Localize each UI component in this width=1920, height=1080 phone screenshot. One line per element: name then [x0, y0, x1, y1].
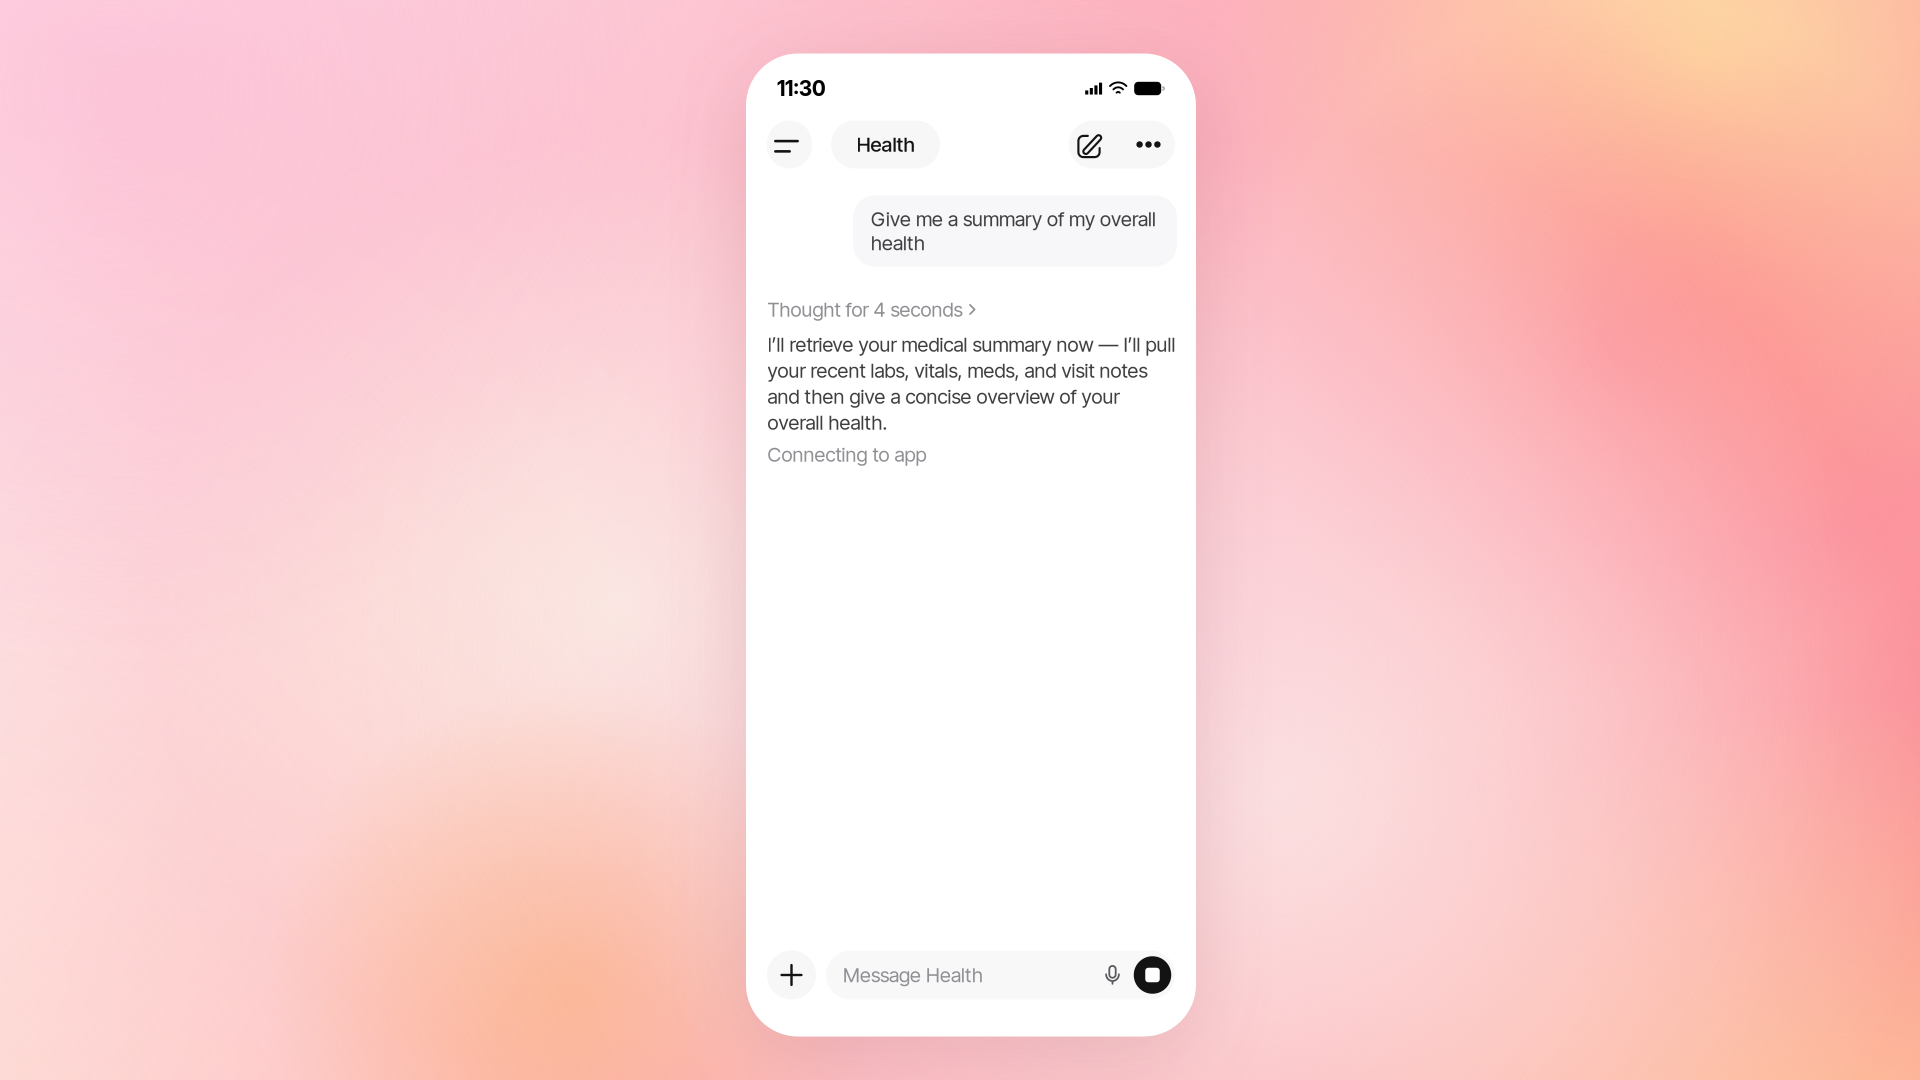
staticText: Thought for 4 seconds	[767, 298, 962, 322]
button[interactable]: Health	[831, 120, 940, 168]
staticText: Message Health	[843, 963, 983, 987]
button[interactable]: Dictate	[1095, 950, 1130, 999]
button[interactable]: Open sidebar	[767, 120, 812, 168]
staticText: 11:30	[777, 76, 826, 101]
button[interactable]: Stop generating	[1130, 950, 1175, 999]
button[interactable]: Add attachment	[767, 950, 816, 999]
staticText: Give me a summary of my overall health	[871, 207, 1156, 255]
staticText: Connecting to app	[767, 442, 926, 466]
staticText: Health	[856, 132, 914, 157]
button[interactable]: New chat	[1069, 120, 1122, 168]
button[interactable]: More options	[1122, 120, 1175, 168]
staticText: I’ll retrieve your medical summary now —…	[767, 333, 1175, 434]
